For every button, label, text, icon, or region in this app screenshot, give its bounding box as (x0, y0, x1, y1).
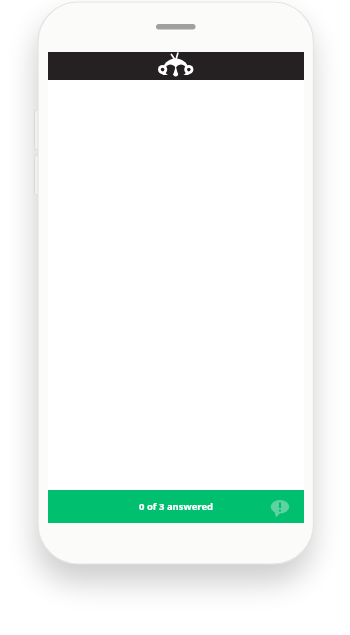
button[interactable]: 0 of 3 answered (48, 490, 304, 523)
staticText: 0 of 3 answered (139, 500, 214, 513)
button[interactable] (48, 52, 304, 80)
